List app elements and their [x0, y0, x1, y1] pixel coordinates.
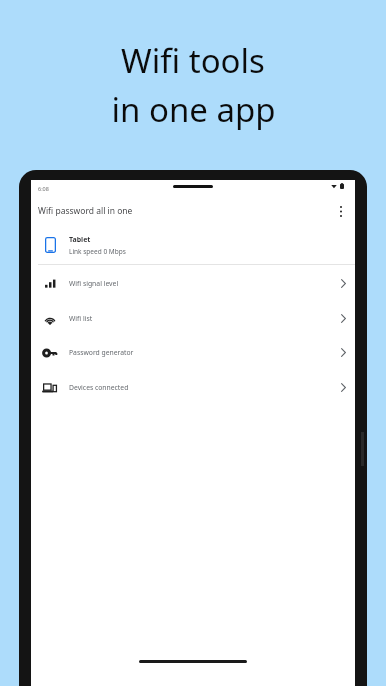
staticText: Wifi list [69, 314, 331, 323]
button[interactable]: Devices connected [31, 370, 355, 405]
staticText: Wifi tools [121, 38, 265, 83]
button[interactable]: Wifi list [31, 301, 355, 336]
staticText: Wifi signal level [69, 279, 331, 288]
staticText: Password generator [69, 348, 331, 357]
button[interactable]: Tablet [31, 226, 355, 264]
staticText: Link speed 0 Mbps [69, 247, 126, 256]
staticText: in one app [111, 87, 276, 132]
staticText: 6:08 [38, 185, 49, 192]
button[interactable]: Wifi signal level [31, 266, 355, 301]
button[interactable]: Password generator [31, 335, 355, 370]
staticText: Devices connected [69, 383, 331, 392]
staticText: Tablet [69, 235, 91, 245]
button[interactable]: More options [330, 200, 352, 222]
staticText: Wifi password all in one [38, 205, 133, 217]
